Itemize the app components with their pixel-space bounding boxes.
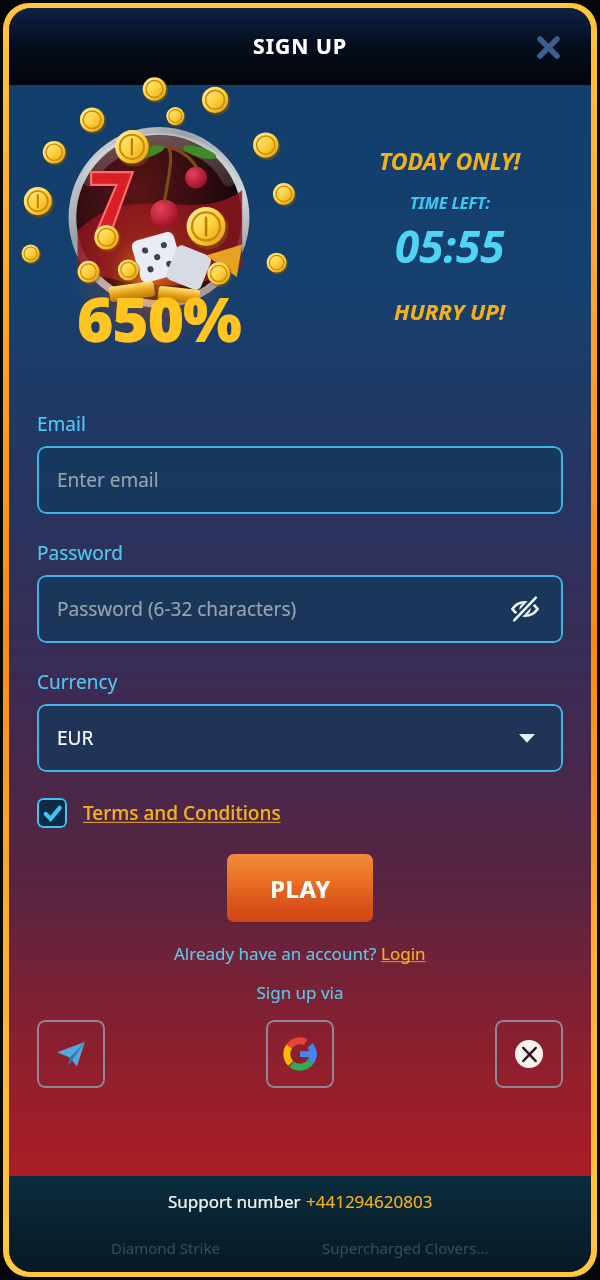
staticText: TIME LEFT: [410,192,491,214]
button[interactable]: Enter email [37,446,563,514]
button[interactable]: PLAY [227,854,373,922]
staticText: 650% [77,276,241,360]
button[interactable]: Toggle password visibility [507,591,543,627]
button[interactable]: Select currency [511,722,543,754]
staticText: Enter email [57,467,543,493]
staticText: Currency [37,669,118,695]
button[interactable]: Password (6-32 characters) [37,575,563,643]
staticText: Already have an account? [174,942,381,965]
staticText: Support number [168,1190,306,1213]
button[interactable]: Sign up with X [495,1020,563,1088]
staticText: EUR [57,725,511,751]
staticText: Diamond Strike [111,1238,220,1258]
staticText: Sign up via [37,981,563,1004]
staticText: Terms and Conditions [83,800,281,826]
button[interactable]: Terms and Conditions [37,798,281,828]
button[interactable]: +441294620803 [306,1190,433,1213]
button[interactable]: EUR [37,704,563,772]
staticText: SIGN UP [253,32,348,61]
button[interactable]: Login [381,942,426,965]
button[interactable]: Sign up with Google [266,1020,334,1088]
button[interactable]: Close [531,30,565,64]
staticText: Email [37,411,86,437]
staticText: PLAY [270,872,331,905]
button[interactable]: Sign up with Telegram [37,1020,105,1088]
staticText: Password (6-32 characters) [57,596,507,622]
staticText: 05:55 [395,216,505,276]
staticText: HURRY UP! [394,296,506,326]
staticText: Password [37,540,123,566]
staticText: TODAY ONLY! [379,145,521,176]
staticText: Supercharged Clovers... [322,1238,489,1258]
